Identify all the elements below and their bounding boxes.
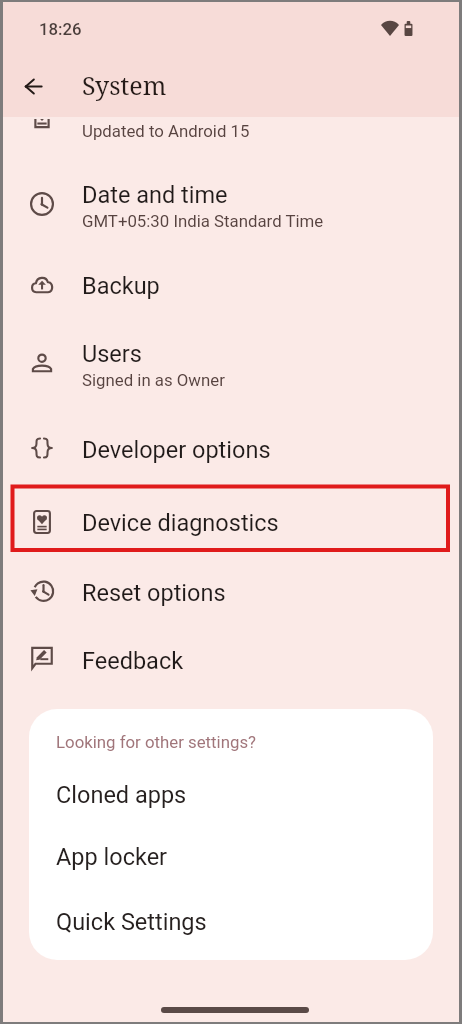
staticText: Signed in as Owner bbox=[82, 370, 225, 390]
staticText: App locker bbox=[56, 843, 168, 871]
staticText: Device diagnostics bbox=[82, 509, 279, 537]
button[interactable]: Reset options bbox=[3, 560, 459, 628]
button[interactable]: Device diagnostics bbox=[3, 492, 459, 560]
staticText: Feedback bbox=[82, 647, 184, 675]
staticText: 18:26 bbox=[39, 19, 82, 39]
staticText: Date and time bbox=[82, 181, 228, 209]
button[interactable]: Feedback bbox=[3, 628, 459, 696]
staticText: Updated to Android 15 bbox=[82, 121, 250, 141]
staticText: Developer options bbox=[82, 436, 271, 464]
button[interactable]: Date and time bbox=[3, 148, 459, 226]
button[interactable]: Back bbox=[14, 67, 53, 106]
button[interactable]: App locker bbox=[29, 833, 433, 888]
staticText: Backup bbox=[82, 272, 160, 300]
button[interactable]: Backup bbox=[3, 254, 459, 322]
staticText: Users bbox=[82, 340, 142, 368]
button[interactable]: Users bbox=[3, 322, 459, 400]
button[interactable]: Quick Settings bbox=[29, 898, 433, 953]
staticText: Looking for other settings? bbox=[56, 732, 257, 752]
staticText: Quick Settings bbox=[56, 908, 207, 936]
staticText: Cloned apps bbox=[56, 781, 187, 809]
button[interactable]: Updated to Android 15 bbox=[3, 119, 459, 154]
staticText: System bbox=[82, 68, 167, 102]
staticText: Reset options bbox=[82, 579, 226, 607]
button[interactable]: Cloned apps bbox=[29, 771, 433, 826]
staticText: GMT+05:30 India Standard Time bbox=[82, 211, 324, 231]
button[interactable]: Developer options bbox=[3, 417, 459, 485]
